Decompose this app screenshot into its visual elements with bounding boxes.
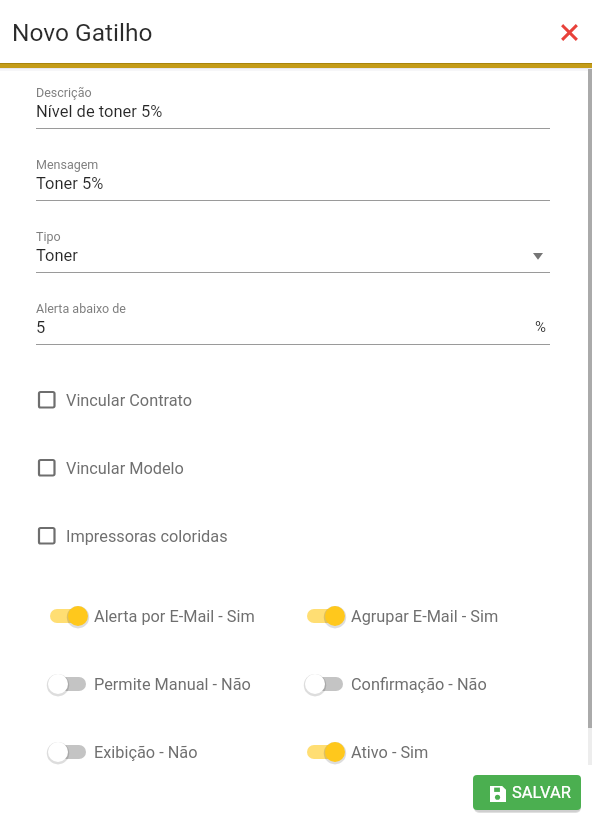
button[interactable]: Impressoras coloridas <box>30 520 290 552</box>
staticText: Descrição <box>36 85 92 100</box>
button[interactable]: Alerta por E-Mail - Sim <box>44 599 259 633</box>
button[interactable]: Ativo - Sim <box>301 735 436 769</box>
staticText: Tipo <box>36 229 61 244</box>
staticText: Mensagem <box>36 157 99 172</box>
staticText: Vincular Modelo <box>66 459 184 478</box>
staticText: Nível de toner 5% <box>36 102 163 121</box>
button[interactable]: Fechar <box>553 16 585 48</box>
staticText: Impressoras coloridas <box>66 527 228 546</box>
staticText: Agrupar E-Mail - Sim <box>351 607 499 626</box>
button[interactable]: Vincular Modelo <box>30 452 290 484</box>
staticText: % <box>535 318 546 336</box>
staticText: Toner <box>36 246 78 265</box>
button[interactable]: Vincular Contrato <box>30 384 290 416</box>
staticText: Permite Manual - Não <box>94 675 251 694</box>
staticText: Ativo - Sim <box>351 743 429 762</box>
staticText: Exibição - Não <box>94 743 198 762</box>
button[interactable]: Confirmação - Não <box>301 667 493 701</box>
button[interactable]: Agrupar E-Mail - Sim <box>301 599 506 633</box>
staticText: Confirmação - Não <box>351 675 487 694</box>
staticText: SALVAR <box>512 783 571 802</box>
staticText: Novo Gatilho <box>12 18 153 47</box>
staticText: Alerta por E-Mail - Sim <box>94 607 255 626</box>
staticText: Vincular Contrato <box>66 391 193 410</box>
button[interactable]: Permite Manual - Não <box>44 667 254 701</box>
staticText: 5 <box>36 318 46 337</box>
button[interactable]: SALVAR <box>473 775 581 810</box>
button[interactable]: Exibição - Não <box>44 735 204 769</box>
staticText: Alerta abaixo de <box>36 301 126 316</box>
staticText: Toner 5% <box>36 174 104 193</box>
